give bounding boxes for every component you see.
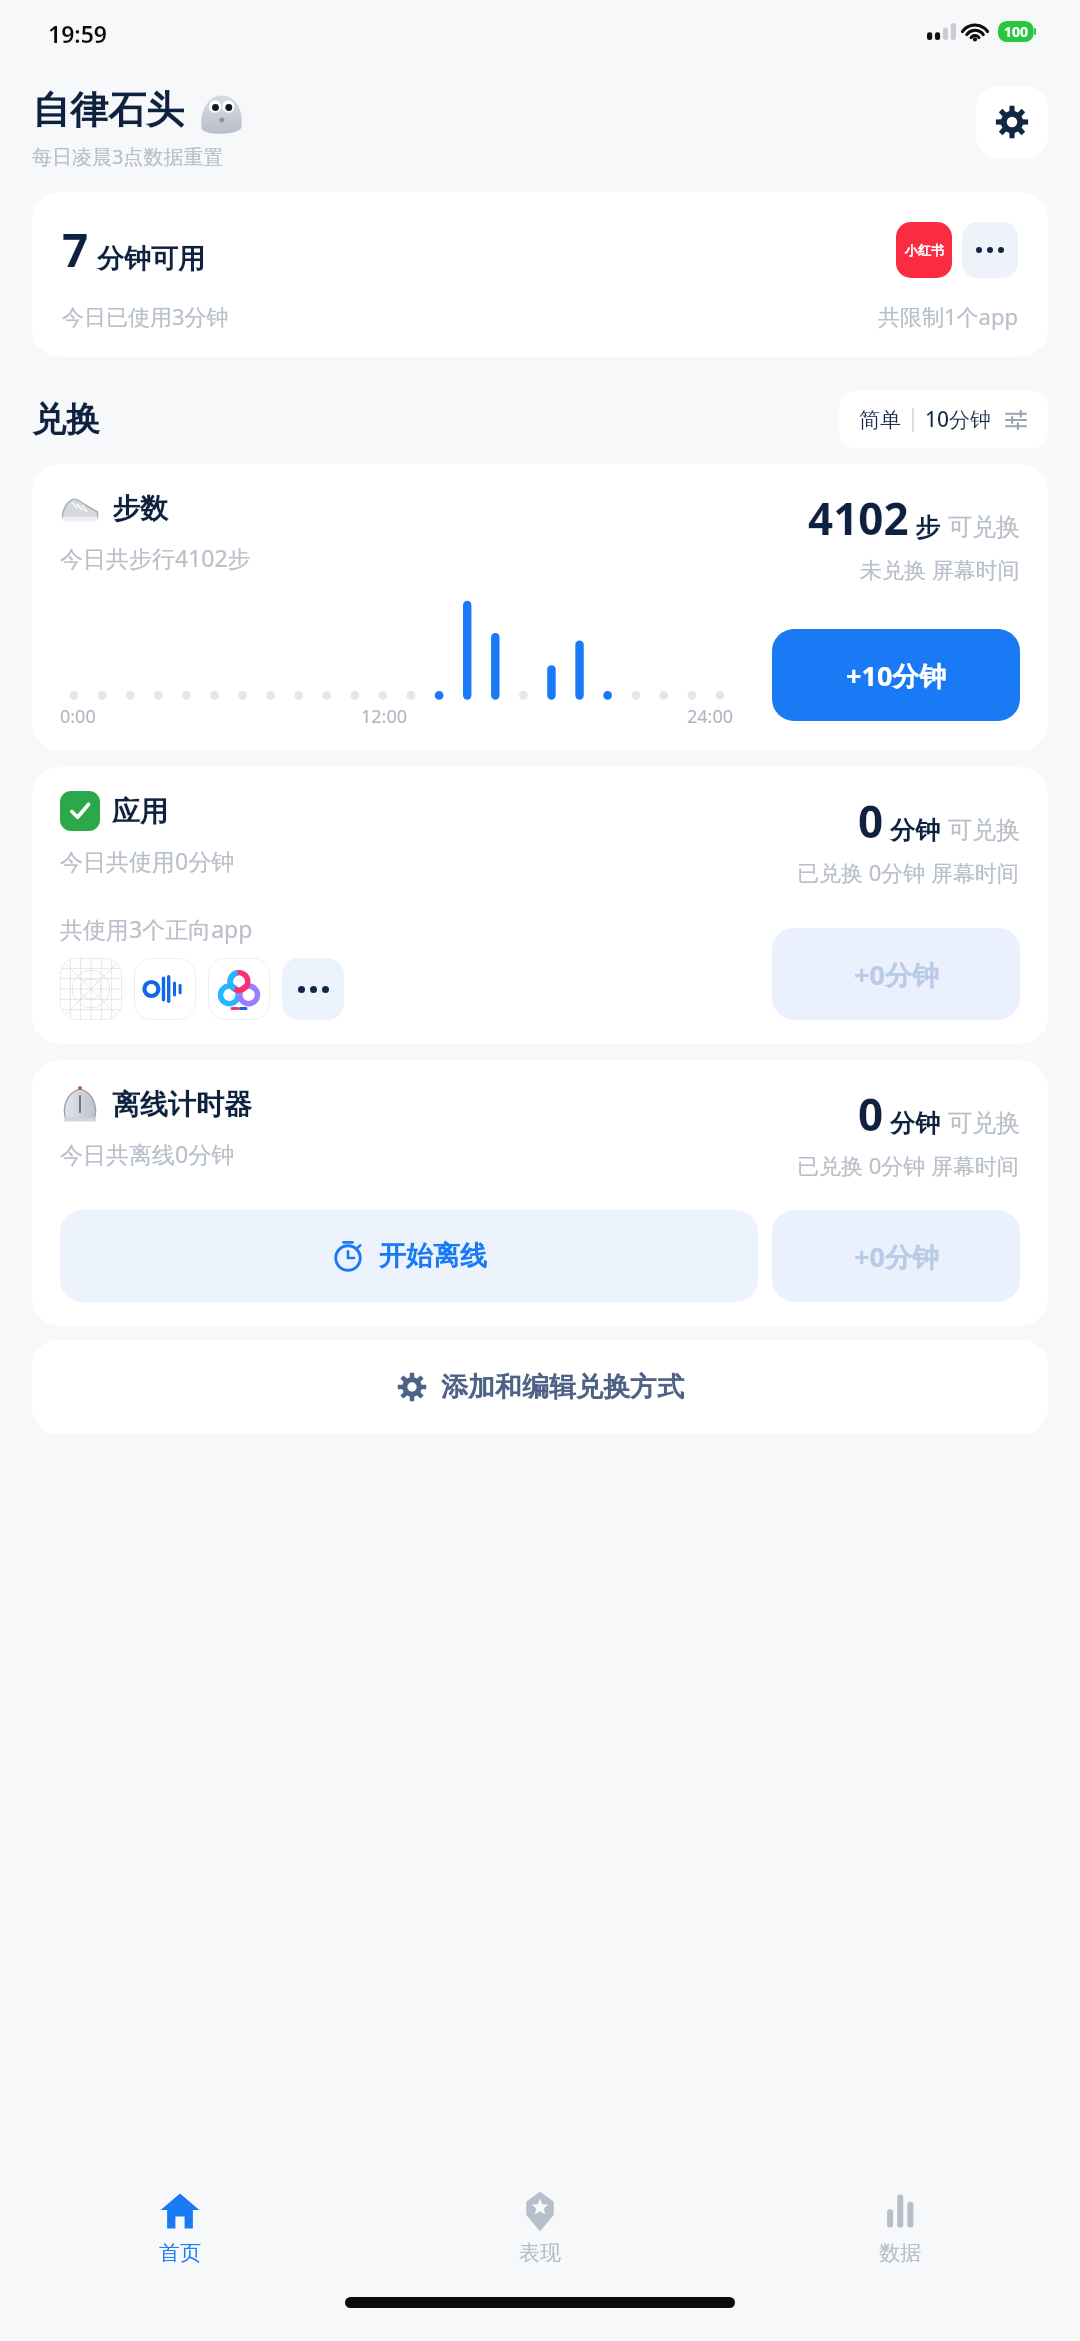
staticText: 19:59: [48, 18, 107, 49]
staticText: 0: [858, 791, 884, 851]
staticText: 12:00: [361, 704, 408, 729]
staticText: 分钟: [890, 815, 940, 846]
button[interactable]: Xiaohongshu app: [896, 222, 952, 278]
staticText: 自律石头: [32, 86, 184, 134]
staticText: 今日共使用0分钟: [60, 845, 235, 876]
button[interactable]: 数据: [720, 2180, 1080, 2274]
button[interactable]: +0分钟: [772, 1210, 1020, 1302]
button[interactable]: 首页: [0, 2180, 360, 2274]
button[interactable]: Settings: [976, 86, 1048, 158]
staticText: 开始离线: [379, 1239, 487, 1273]
staticText: 首页: [159, 2240, 201, 2266]
staticText: 24:00: [687, 704, 734, 729]
staticText: 表现: [519, 2240, 561, 2266]
button[interactable]: 添加和编辑兑换方式: [32, 1340, 1048, 1434]
staticText: 今日共步行4102步: [60, 542, 251, 573]
staticText: 简单: [859, 407, 901, 433]
button[interactable]: More apps: [962, 222, 1018, 278]
button[interactable]: 表现: [360, 2180, 720, 2274]
staticText: 今日共离线0分钟: [60, 1138, 235, 1169]
staticText: 添加和编辑兑换方式: [441, 1370, 684, 1404]
staticText: 0: [858, 1084, 884, 1144]
button[interactable]: App placeholder: [60, 958, 122, 1020]
staticText: 每日凌晨3点数据重置: [32, 143, 224, 170]
staticText: 100: [1004, 22, 1029, 41]
staticText: 步: [915, 512, 940, 543]
button[interactable]: 简单: [839, 391, 1048, 448]
button[interactable]: More apps: [282, 958, 344, 1020]
staticText: 已兑换 0分钟 屏幕时间: [797, 857, 1020, 887]
button[interactable]: Ximalaya app: [134, 958, 196, 1020]
staticText: 应用: [112, 794, 168, 829]
staticText: 可兑换: [948, 815, 1020, 845]
staticText: 共使用3个正向app: [60, 913, 253, 944]
staticText: 数据: [879, 2240, 921, 2266]
button[interactable]: 7: [32, 192, 1048, 357]
staticText: 可兑换: [948, 512, 1020, 542]
button[interactable]: 应用: [32, 767, 1048, 1044]
staticText: +0分钟: [854, 1238, 939, 1275]
staticText: 今日已使用3分钟: [62, 301, 878, 331]
staticText: 共限制1个app: [878, 301, 1018, 331]
staticText: 已兑换 0分钟 屏幕时间: [797, 1150, 1020, 1180]
staticText: 小红书: [905, 242, 944, 258]
button[interactable]: +10分钟: [772, 629, 1020, 721]
button[interactable]: 开始离线: [60, 1210, 758, 1302]
staticText: +10分钟: [846, 657, 947, 694]
button[interactable]: 离线计时器: [32, 1060, 1048, 1326]
staticText: 10分钟: [925, 405, 992, 434]
staticText: 可兑换: [948, 1108, 1020, 1138]
button[interactable]: +0分钟: [772, 928, 1020, 1020]
staticText: 离线计时器: [112, 1087, 252, 1122]
staticText: 0:00: [60, 704, 96, 729]
staticText: 分钟: [890, 1108, 940, 1139]
staticText: 步数: [112, 491, 168, 526]
button[interactable]: 步数: [32, 464, 1048, 751]
button[interactable]: Baidu Netdisk app: [208, 958, 270, 1020]
staticText: 4102: [808, 488, 909, 548]
staticText: 未兑换 屏幕时间: [860, 554, 1020, 584]
staticText: 7: [62, 218, 89, 281]
staticText: 兑换: [32, 398, 839, 441]
staticText: +0分钟: [854, 956, 939, 993]
staticText: 分钟可用: [97, 242, 205, 276]
